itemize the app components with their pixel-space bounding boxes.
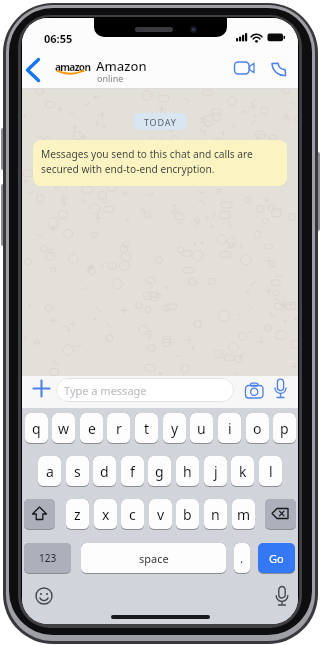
button[interactable]: x [94,499,117,530]
staticText: v [157,505,165,524]
staticText: Go [269,551,284,566]
button[interactable]: amazon [54,58,94,84]
button[interactable] [269,59,289,77]
button[interactable]: z [66,499,89,530]
button[interactable]: k [231,456,254,487]
button[interactable]: space [81,543,226,574]
button[interactable]: m [232,499,255,530]
button[interactable]: d [93,456,116,487]
staticText: r [116,419,122,438]
staticText: Amazon [96,57,147,75]
button[interactable] [273,378,288,401]
staticText: c [129,505,136,524]
staticText: u [197,419,206,438]
staticText: 123 [39,551,57,565]
button[interactable]: t [135,413,158,444]
staticText: space [139,551,169,566]
staticText: f [130,462,135,481]
button[interactable]: f [121,456,144,487]
staticText: t [144,419,150,438]
button[interactable]: s [66,456,89,487]
button[interactable]: p [273,413,296,444]
staticText: i [228,419,232,438]
staticText: h [183,462,192,481]
button[interactable] [265,499,296,530]
staticText: l [269,462,273,481]
button[interactable]: g [148,456,171,487]
staticText: n [211,505,220,524]
button[interactable]: h [176,456,199,487]
staticText: TODAY [144,116,177,128]
button[interactable]: y [163,413,186,444]
button[interactable]: o [246,413,269,444]
button[interactable]: a [38,456,61,487]
staticText: amazon [55,60,91,74]
button[interactable]: i [218,413,241,444]
button[interactable]: Go [258,543,295,574]
staticText: e [88,419,96,438]
button[interactable]: v [149,499,172,530]
staticText: d [100,462,109,481]
button[interactable]: e [80,413,103,444]
button[interactable] [24,499,55,530]
staticText: z [74,505,81,524]
staticText: s [74,462,81,481]
staticText: 06:55 [44,31,73,44]
staticText: b [183,505,192,524]
staticText: k [239,462,247,481]
button[interactable]: u [190,413,213,444]
button[interactable]: n [204,499,227,530]
staticText: m [237,505,251,524]
button[interactable] [33,380,50,397]
button[interactable]: Type a message [56,378,234,402]
button[interactable]: c [121,499,144,530]
button[interactable] [274,585,290,607]
staticText: Messages you send to this chat and calls… [41,147,253,176]
staticText: q [32,419,41,438]
button[interactable]: q [25,413,48,444]
button[interactable]: 123 [24,543,71,574]
button[interactable]: w [52,413,75,444]
button[interactable]: . [234,543,250,574]
staticText: . [240,550,244,566]
staticText: x [102,505,110,524]
button[interactable] [22,56,46,84]
staticText: y [171,419,179,438]
button[interactable]: r [107,413,130,444]
staticText: g [155,462,164,481]
staticText: w [58,419,70,438]
button[interactable] [232,59,256,77]
staticText: j [214,462,218,481]
button[interactable] [244,382,265,399]
staticText: online [97,72,124,84]
staticText: a [46,462,54,481]
staticText: p [280,419,289,438]
button[interactable]: b [176,499,199,530]
button[interactable]: l [259,456,282,487]
staticText: o [253,419,262,438]
staticText: Type a message [64,383,147,398]
button[interactable]: j [204,456,227,487]
button[interactable] [35,587,53,605]
